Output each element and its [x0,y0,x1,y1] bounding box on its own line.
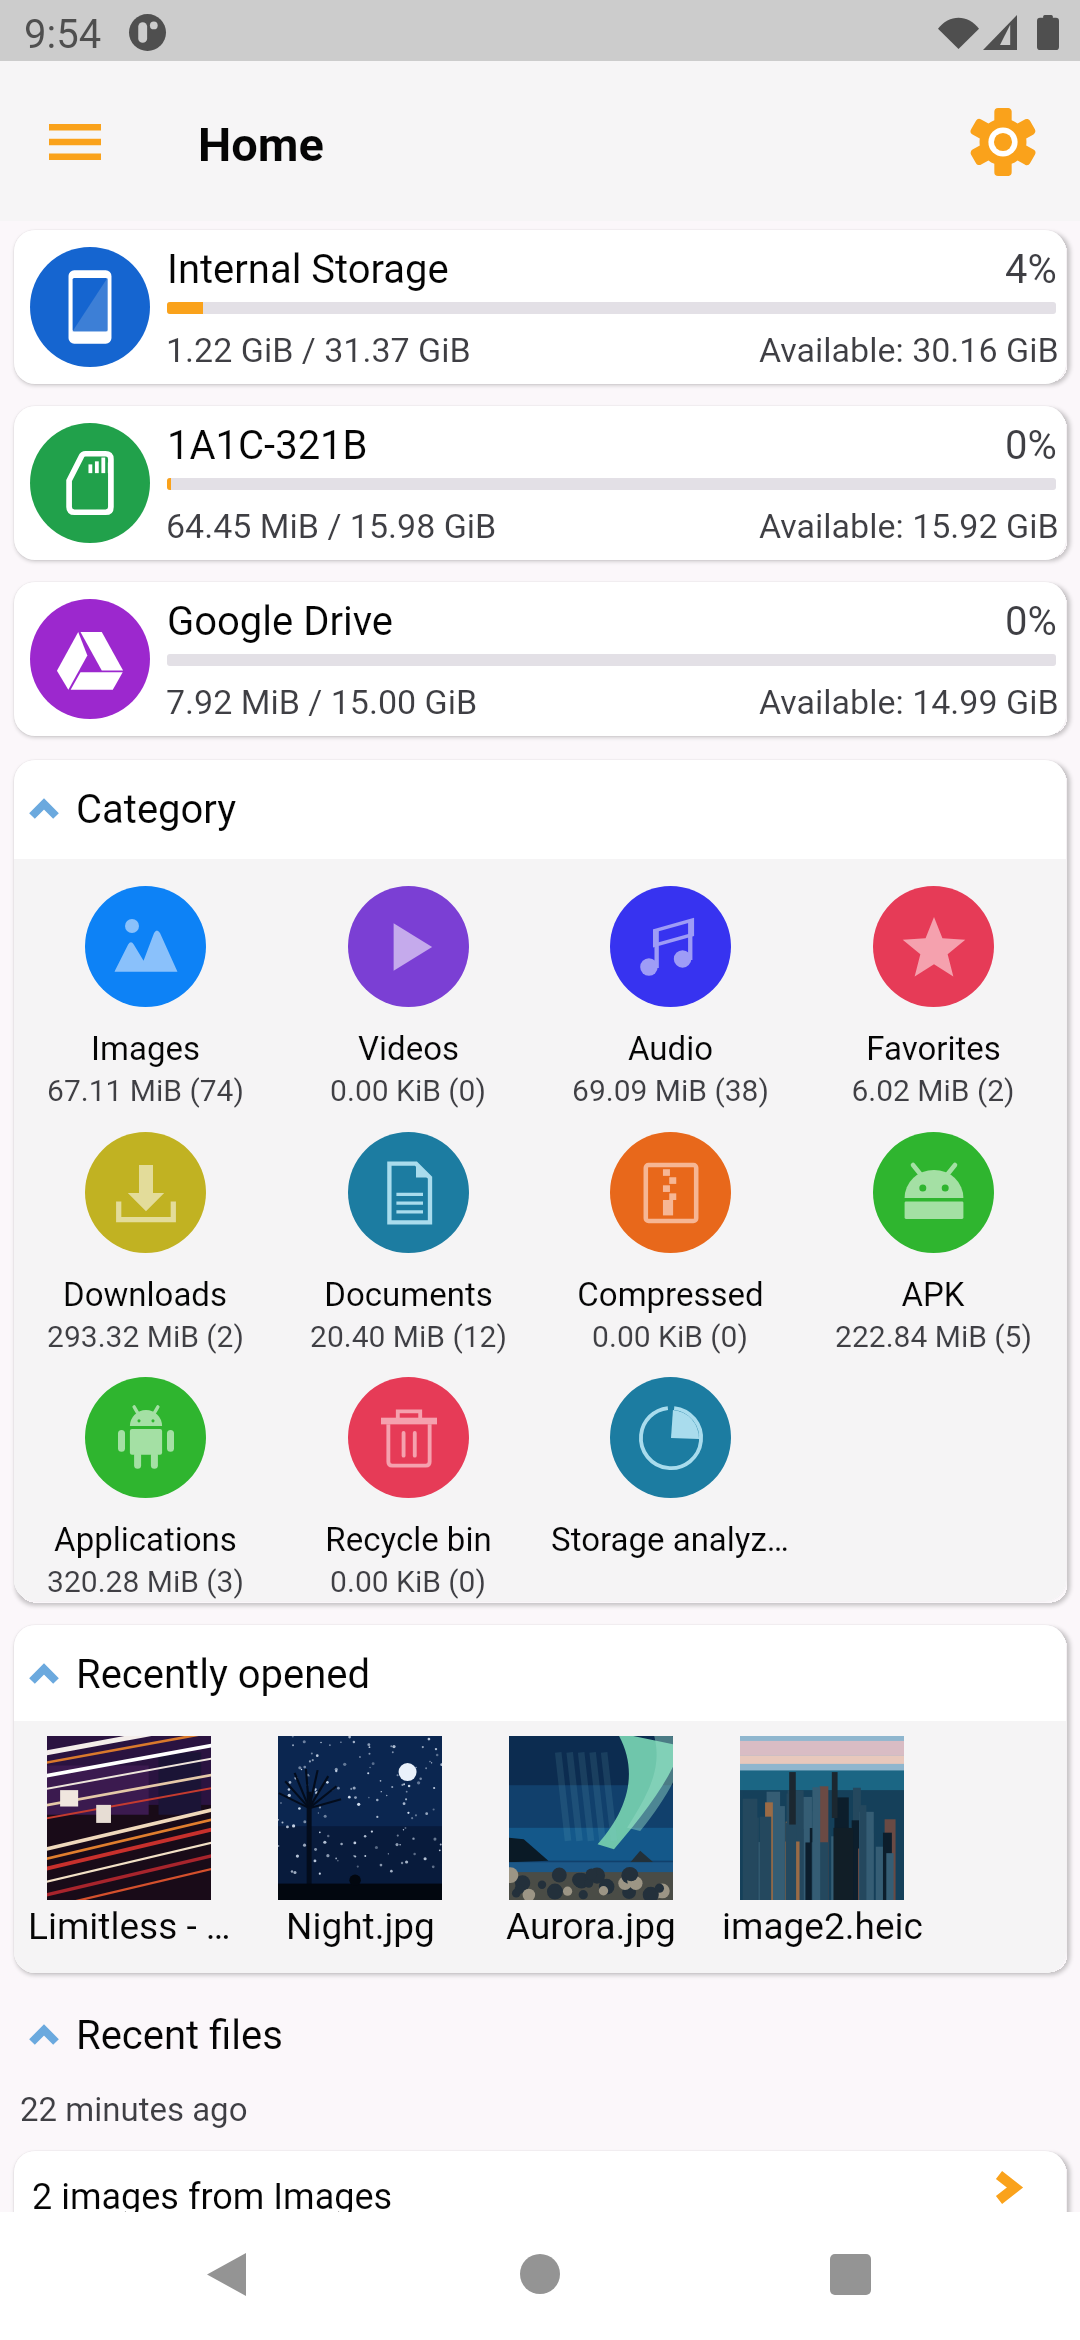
staticText: 1A1C-321B [167,422,368,469]
button[interactable]: 2 images from Images [14,2151,1066,2311]
staticText: Night.jpg [286,1905,435,1948]
button[interactable]: Settings [955,94,1051,190]
button[interactable]: Aurora.jpg [401,1736,781,1948]
staticText: Applications [54,1520,237,1559]
staticText: 6.02 MiB (2) [851,1073,1015,1108]
staticText: 1.22 GiB / 31.37 GiB [166,330,471,370]
staticText: 320.28 MiB (3) [47,1564,244,1599]
button[interactable]: image2.heic [632,1736,1012,1948]
staticText: 0.00 KiB (0) [330,1564,486,1599]
staticText: Limitless - … [28,1905,231,1948]
staticText: Downloads [63,1275,227,1314]
button[interactable]: Compressed [539,1132,801,1360]
button[interactable]: Images [14,886,276,1114]
staticText: Google Drive [167,598,394,645]
button[interactable]: Downloads [14,1132,276,1360]
staticText: Favorites [866,1029,1001,1068]
staticText: Available: 14.99 GiB [759,682,1059,722]
button[interactable]: Favorites [802,886,1064,1114]
button[interactable]: Documents [277,1132,539,1360]
button[interactable]: Google Drive [14,582,1066,736]
staticText: Category [76,786,237,833]
staticText: 20.40 MiB (12) [310,1319,507,1354]
button[interactable]: Storage analyz… [539,1377,801,1601]
staticText: image2.heic [722,1905,923,1948]
staticText: Home [198,117,324,172]
staticText: Videos [358,1029,459,1068]
staticText: Recently opened [76,1651,371,1698]
staticText: Available: 15.92 GiB [759,506,1059,546]
button[interactable]: Home [475,2210,605,2338]
button[interactable]: Applications [14,1377,276,1601]
staticText: 0.00 KiB (0) [592,1319,748,1354]
staticText: Internal Storage [167,246,449,293]
button[interactable]: APK [802,1132,1064,1360]
staticText: 7.92 MiB / 15.00 GiB [166,682,478,722]
staticText: Available: 30.16 GiB [759,330,1059,370]
button[interactable]: Back [161,2210,291,2338]
button[interactable]: Audio [539,886,801,1114]
staticText: APK [901,1275,965,1314]
staticText: Compressed [577,1275,764,1314]
button[interactable]: Videos [277,886,539,1114]
button[interactable]: Limitless - … [14,1736,319,1948]
staticText: Recent files [76,2012,283,2059]
staticText: 2 images from Images [32,2176,393,2218]
staticText: 222.84 MiB (5) [835,1319,1032,1354]
button[interactable]: Recycle bin [277,1377,539,1601]
staticText: Recycle bin [325,1520,492,1559]
staticText: 293.32 MiB (2) [47,1319,244,1354]
staticText: 9:54 [24,11,102,58]
staticText: Aurora.jpg [506,1905,676,1948]
staticText: 0% [1005,598,1057,645]
staticText: 67.11 MiB (74) [47,1073,244,1108]
button[interactable]: Recent apps [785,2210,915,2338]
staticText: Audio [628,1029,713,1068]
staticText: Documents [324,1275,493,1314]
button[interactable]: Night.jpg [170,1736,550,1948]
button[interactable]: Recently opened [14,1625,1066,1724]
button[interactable]: Category [14,760,1066,859]
staticText: Storage analyz… [551,1520,789,1559]
button[interactable]: Recent files [15,1986,515,2085]
staticText: 22 minutes ago [20,2090,248,2129]
staticText: 0% [1005,422,1057,469]
staticText: 64.45 MiB / 15.98 GiB [166,506,497,546]
button[interactable]: Internal Storage [14,230,1066,384]
staticText: 0.00 KiB (0) [330,1073,486,1108]
button[interactable]: Open navigation menu [27,94,123,190]
button[interactable]: 1A1C-321B [14,406,1066,560]
staticText: 69.09 MiB (38) [572,1073,769,1108]
staticText: 4% [1005,246,1057,293]
staticText: Images [91,1029,200,1068]
